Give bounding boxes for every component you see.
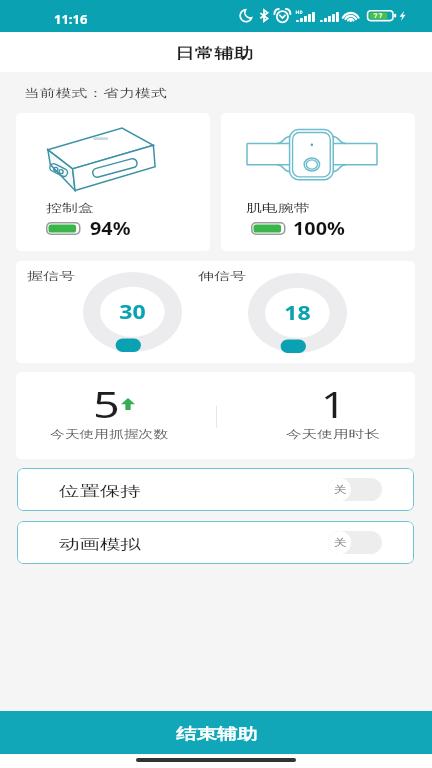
staticText: 位置保持	[59, 483, 141, 501]
staticText: 30	[119, 298, 146, 325]
staticText: 当前模式：省力模式	[24, 86, 167, 100]
staticText: 控制盒	[46, 201, 94, 215]
staticText: 握信号	[27, 269, 75, 283]
staticText: 关	[333, 536, 346, 549]
button[interactable]: 控制盒	[16, 113, 210, 251]
staticText: 肌电腕带	[246, 201, 309, 215]
staticText: 今天使用抓握次数	[50, 427, 168, 441]
staticText: 今天使用时长	[286, 427, 380, 441]
staticText: 11:16	[54, 10, 88, 28]
button[interactable]: 位置保持	[17, 468, 414, 511]
staticText: 伸信号	[198, 269, 246, 283]
staticText: 5	[93, 380, 120, 429]
staticText: 94%	[90, 216, 131, 241]
staticText: 1	[321, 380, 346, 429]
staticText: 18	[284, 299, 311, 326]
button[interactable]: 动画模拟	[17, 521, 414, 564]
button[interactable]: 肌电腕带	[221, 113, 415, 251]
staticText: 动画模拟	[59, 536, 141, 554]
staticText: 结束辅助	[176, 725, 258, 744]
staticText: 100%	[293, 216, 346, 241]
staticText: 关	[333, 483, 346, 496]
button[interactable]: 结束辅助	[0, 711, 432, 754]
other: Status icons	[239, 6, 409, 26]
staticText: 日常辅助	[175, 45, 253, 63]
